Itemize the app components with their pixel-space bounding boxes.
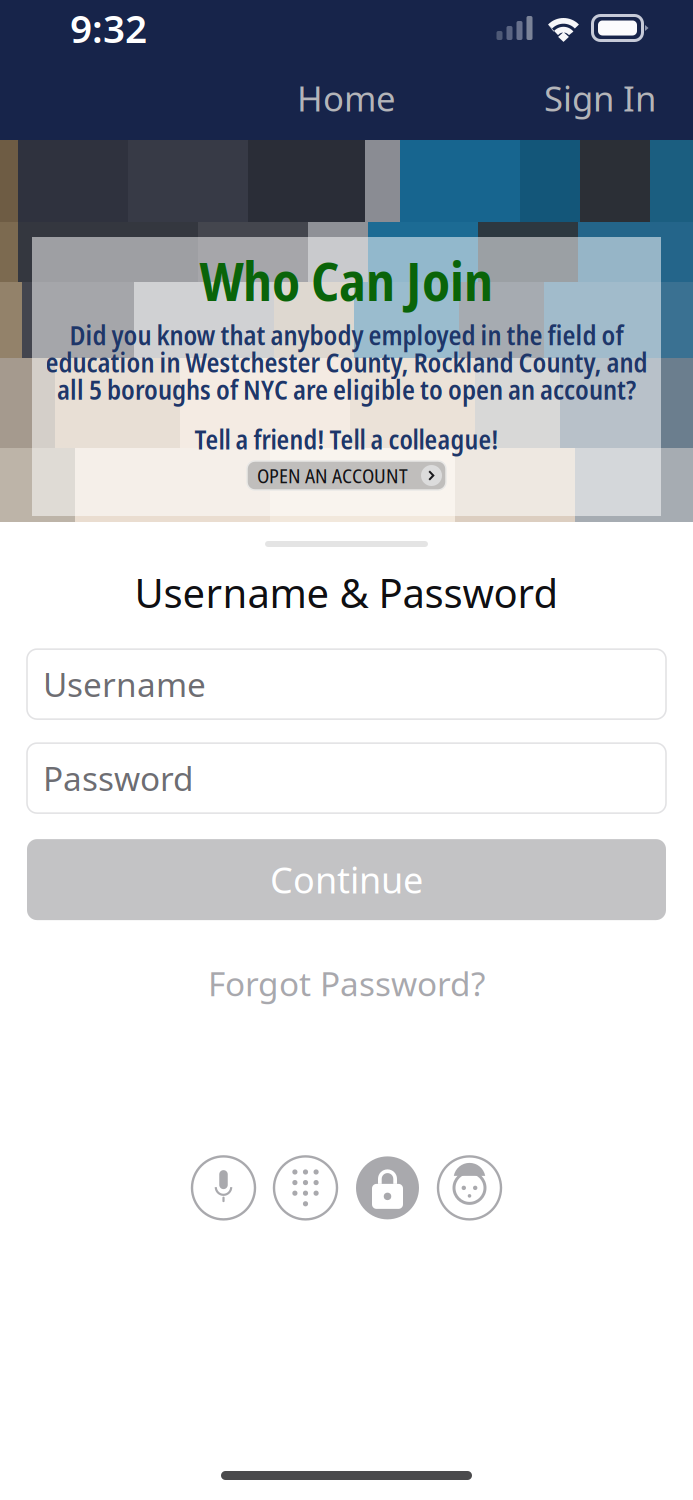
button[interactable]: Passwords [356, 1156, 419, 1219]
button[interactable]: Home [246, 68, 446, 128]
button[interactable]: Sign In [544, 68, 656, 128]
staticText: Continue [270, 856, 423, 903]
staticText: Username [43, 662, 206, 706]
staticText: all 5 boroughs of NYC are eligible to op… [57, 371, 636, 408]
staticText: Forgot Password? [208, 961, 485, 1005]
button[interactable]: Username [27, 649, 666, 719]
staticText: Tell a friend! Tell a colleague! [194, 422, 498, 457]
staticText: Who Can Join [200, 244, 493, 317]
staticText: Sign In [544, 75, 656, 121]
staticText: 9:32 [70, 2, 147, 54]
button[interactable]: Keypad [274, 1156, 337, 1219]
button[interactable]: Dictate [192, 1156, 255, 1219]
staticText: Home [297, 75, 396, 121]
staticText: OPEN AN ACCOUNT [257, 462, 408, 489]
staticText: Password [43, 756, 194, 800]
staticText: Username & Password [134, 566, 558, 619]
button[interactable]: Forgot Password? [208, 961, 485, 1005]
staticText: education in Westchester County, Rocklan… [45, 344, 647, 380]
button[interactable]: Continue [27, 839, 666, 920]
button[interactable]: OPEN AN ACCOUNT [247, 461, 446, 490]
button[interactable]: Password [27, 743, 666, 813]
staticText: Did you know that anybody employed in th… [69, 317, 623, 353]
button[interactable]: Contacts [438, 1156, 501, 1219]
